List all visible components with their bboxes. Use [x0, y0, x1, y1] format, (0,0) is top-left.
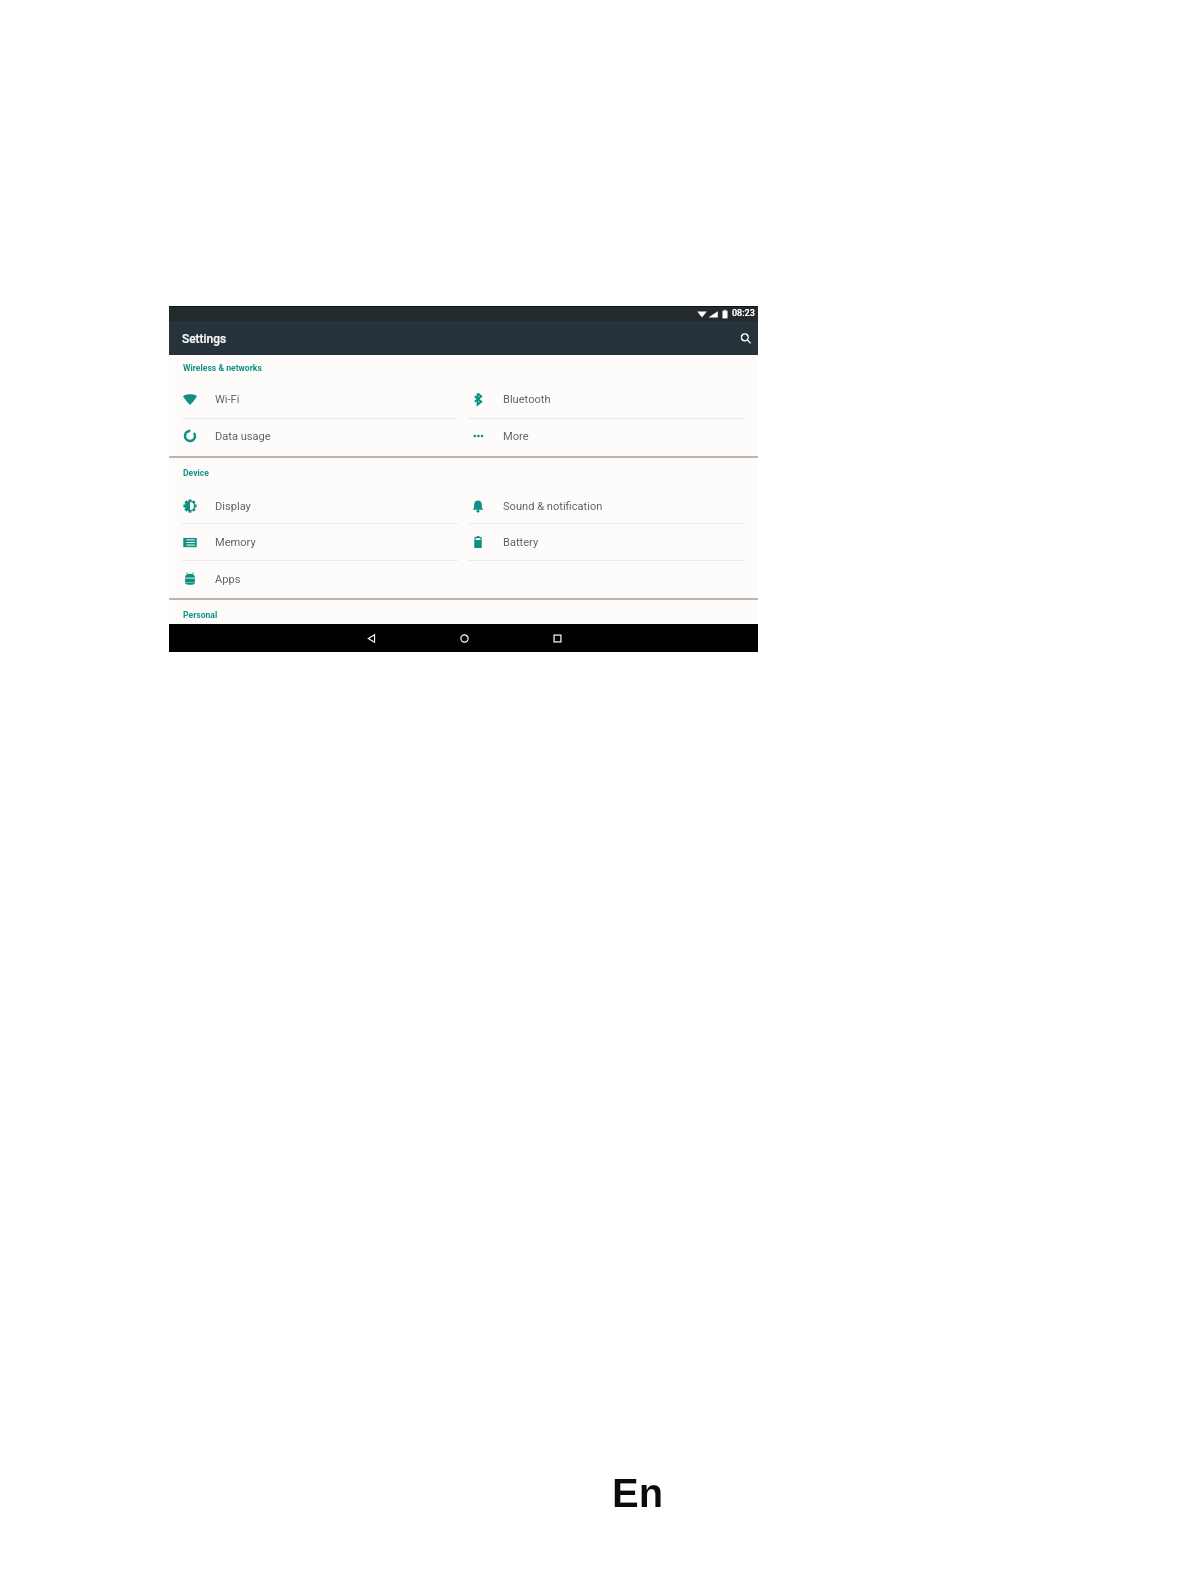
- staticText: Display: [215, 500, 251, 513]
- staticText: En: [612, 1471, 664, 1516]
- staticText: Apps: [215, 573, 241, 586]
- staticText: Data usage: [215, 430, 271, 443]
- staticText: Wireless & networks: [183, 363, 262, 373]
- button[interactable]: More: [463, 418, 758, 454]
- staticText: 08:23: [732, 308, 755, 319]
- staticText: Personal: [183, 610, 218, 620]
- button[interactable]: Sound & notification: [463, 488, 758, 524]
- staticText: Device: [183, 468, 209, 478]
- staticText: Memory: [215, 536, 256, 549]
- button[interactable]: Display: [169, 488, 463, 524]
- staticText: More: [503, 430, 529, 443]
- button[interactable]: Home: [452, 624, 476, 652]
- staticText: Sound & notification: [503, 500, 603, 513]
- staticText: Bluetooth: [503, 393, 551, 406]
- button[interactable]: Back: [359, 624, 383, 652]
- staticText: Battery: [503, 536, 539, 549]
- button[interactable]: Battery: [463, 524, 758, 560]
- button[interactable]: Wi-Fi: [169, 381, 463, 417]
- staticText: Wi-Fi: [215, 393, 240, 406]
- button[interactable]: Apps: [169, 561, 463, 597]
- button[interactable]: Search: [734, 327, 756, 349]
- button[interactable]: Memory: [169, 524, 463, 560]
- staticText: Settings: [182, 332, 226, 346]
- button[interactable]: Bluetooth: [463, 381, 758, 417]
- button[interactable]: Recents: [545, 624, 569, 652]
- button[interactable]: Data usage: [169, 418, 463, 454]
